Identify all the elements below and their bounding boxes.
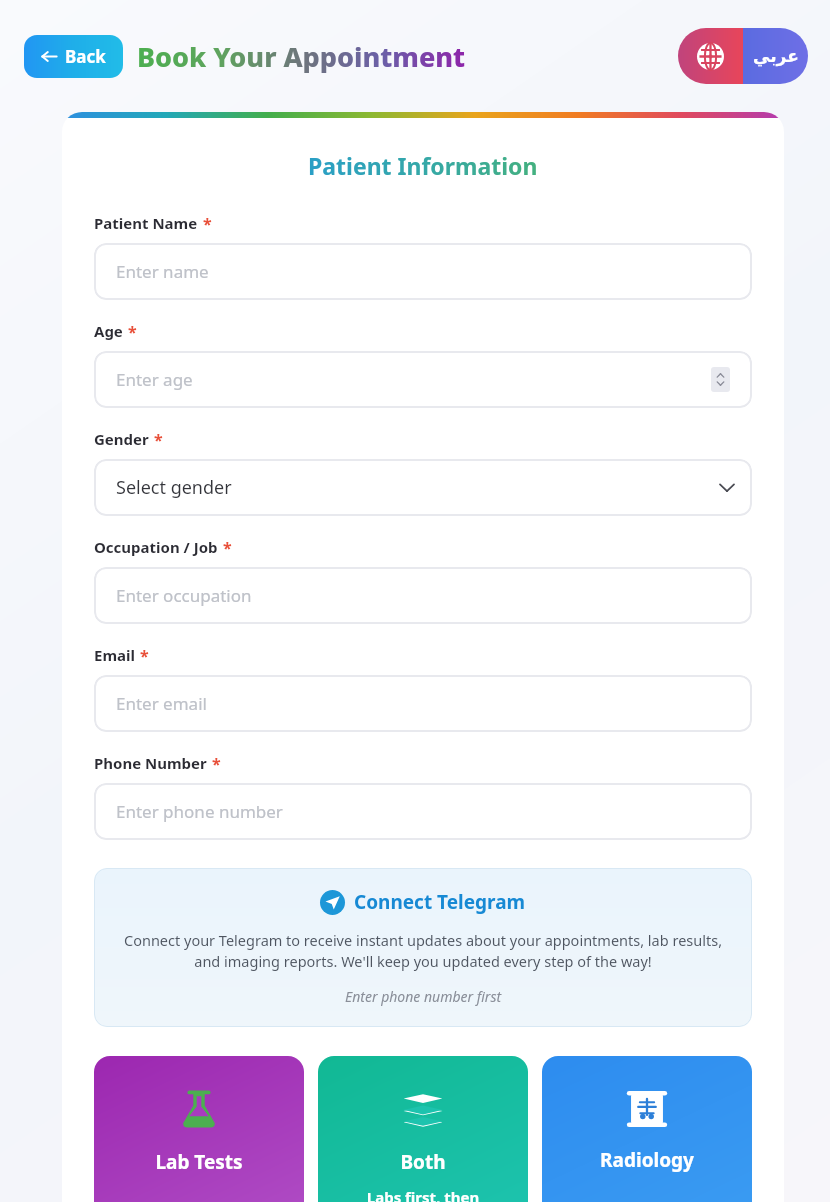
staticText: * <box>223 537 232 559</box>
staticText: عربي <box>753 46 799 66</box>
staticText: Occupation / Job <box>94 537 218 557</box>
staticText: Select gender <box>116 475 232 500</box>
staticText: Age <box>94 321 123 341</box>
staticText: Enter age <box>116 368 193 391</box>
button[interactable]: Connect Telegram <box>94 868 752 1027</box>
staticText: Phone Number <box>94 753 207 773</box>
button[interactable]: Enter occupation <box>94 567 752 624</box>
staticText: Lab Tests <box>155 1149 243 1175</box>
staticText: Gender <box>94 429 149 449</box>
button[interactable]: Both labs and radiology <box>318 1056 528 1202</box>
button[interactable]: Lab Tests <box>94 1056 304 1202</box>
staticText: Enter email <box>116 692 207 715</box>
button[interactable]: Enter email <box>94 675 752 732</box>
staticText: Email <box>94 645 135 665</box>
staticText: Patient Information <box>308 150 538 181</box>
staticText: Enter phone number first <box>345 987 502 1006</box>
staticText: Back <box>65 45 106 68</box>
staticText: Patient Name <box>94 213 198 233</box>
staticText: Radiology <box>600 1147 694 1173</box>
staticText: Both <box>400 1149 446 1175</box>
staticText: Connect Telegram <box>354 889 526 915</box>
staticText: Enter name <box>116 260 209 283</box>
button[interactable]: Enter age <box>94 351 752 408</box>
staticText: * <box>140 645 149 667</box>
staticText: * <box>203 213 212 235</box>
staticText: * <box>212 753 221 775</box>
button[interactable]: Select gender <box>94 459 752 516</box>
staticText: * <box>154 429 163 451</box>
staticText: * <box>128 321 137 343</box>
button[interactable]: Switch language to Arabic <box>678 28 808 84</box>
button[interactable]: Enter phone number <box>94 783 752 840</box>
staticText: Labs first, then Radiology, then Time, t… <box>342 1187 504 1202</box>
staticText: Enter phone number <box>116 800 283 823</box>
button[interactable]: Radiology <box>542 1056 752 1202</box>
button[interactable]: Enter name <box>94 243 752 300</box>
staticText: Book Your Appointment <box>137 38 466 75</box>
staticText: Enter occupation <box>116 584 252 607</box>
staticText: Connect your Telegram to receive instant… <box>114 930 732 972</box>
button[interactable]: Back <box>24 35 123 78</box>
